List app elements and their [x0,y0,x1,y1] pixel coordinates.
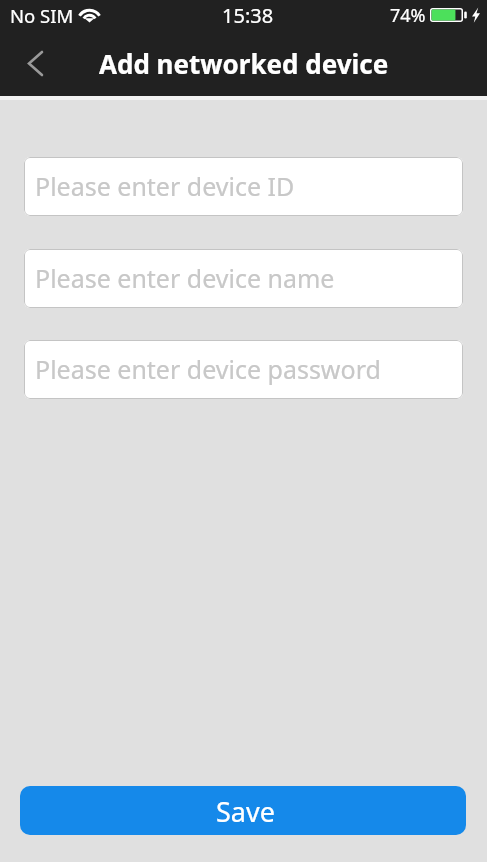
staticText: Please enter device name [35,261,335,295]
button[interactable]: Please enter device password [24,340,463,399]
staticText: Add networked device [99,46,389,81]
staticText: Please enter device ID [35,169,295,203]
staticText: Save [216,793,275,830]
staticText: 74% [390,3,426,28]
staticText: 15:38 [222,2,274,29]
button[interactable]: Save [20,786,466,835]
button[interactable]: Please enter device ID [24,157,463,216]
staticText: No SIM [10,3,74,28]
button[interactable]: Back [7,35,63,91]
staticText: Please enter device password [35,352,381,386]
button[interactable]: Please enter device name [24,249,463,308]
